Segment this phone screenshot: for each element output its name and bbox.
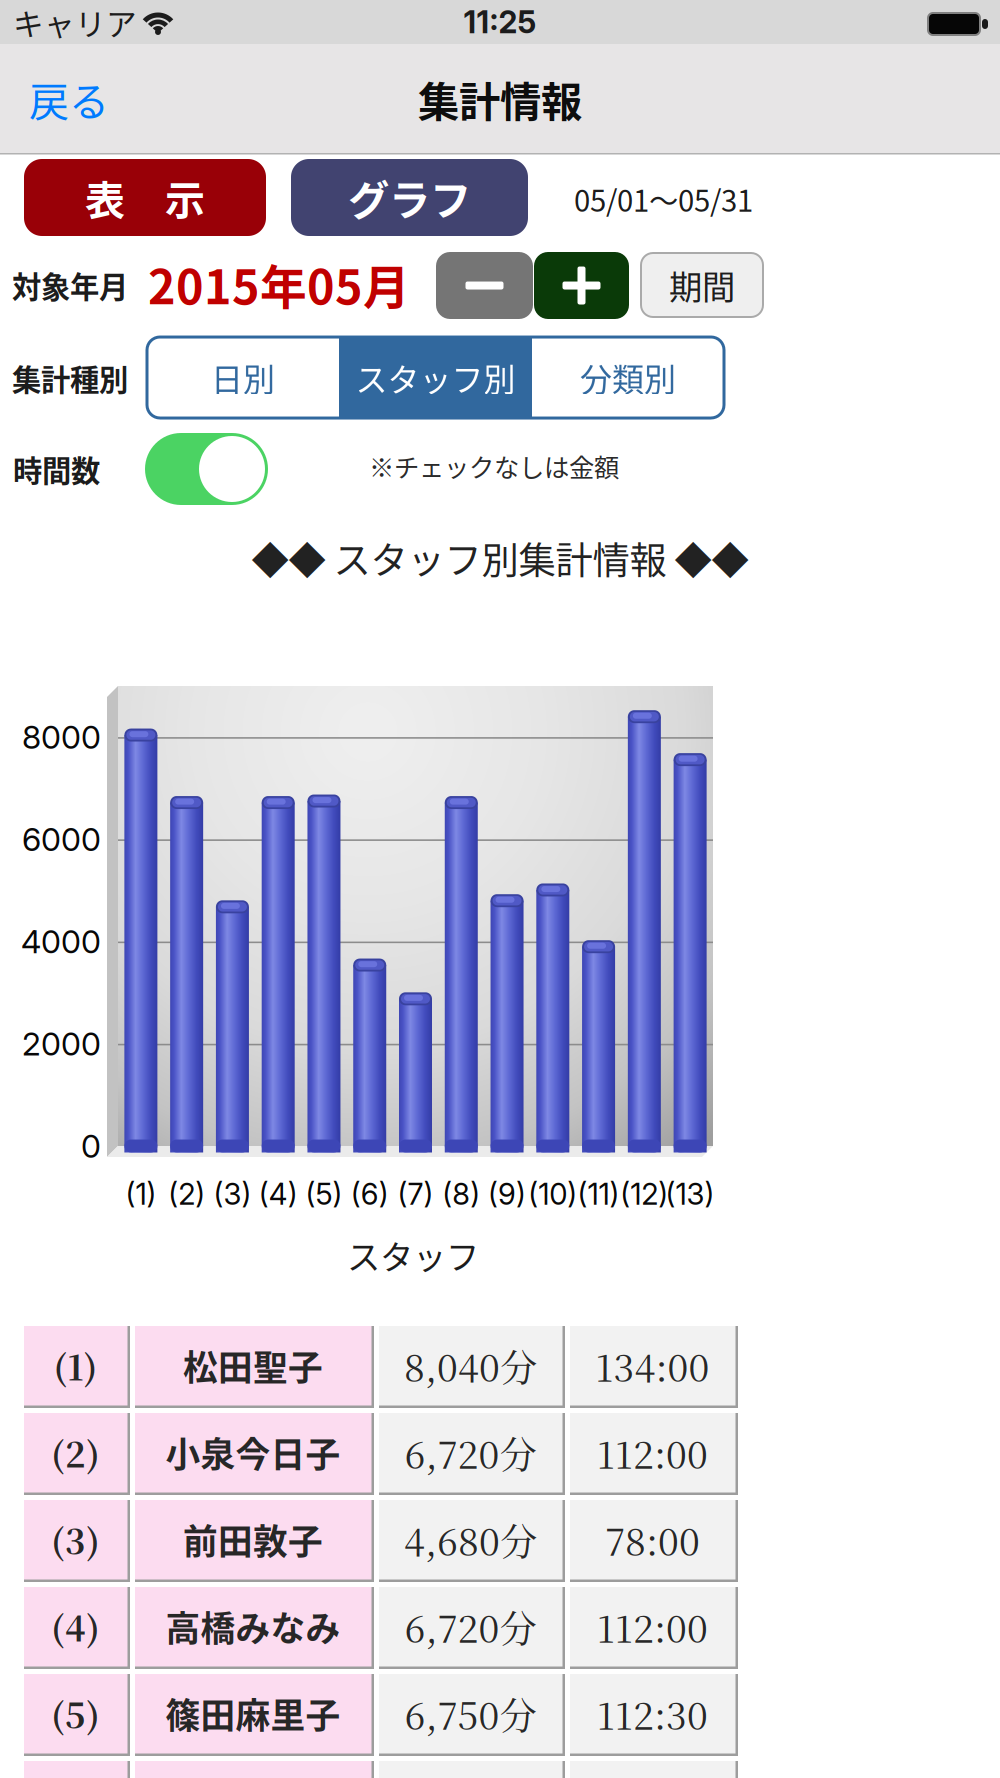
- button[interactable]: 戻る: [4, 68, 134, 130]
- button[interactable]: スタッフ別: [339, 337, 532, 418]
- button[interactable]: 表 示: [24, 159, 266, 236]
- staticText: (1): [53, 1341, 97, 1390]
- staticText: (4): [259, 1176, 298, 1212]
- staticText: (12): [620, 1176, 668, 1212]
- staticText: (1): [125, 1176, 156, 1212]
- staticText: 集計種別: [12, 357, 128, 399]
- staticText: ◆◆ スタッフ別集計情報 ◆◆: [251, 531, 748, 585]
- staticText: (3): [213, 1176, 251, 1212]
- staticText: 8,040分: [404, 1339, 537, 1392]
- staticText: 8000: [22, 718, 101, 756]
- staticText: 4000: [21, 922, 101, 961]
- staticText: (13): [666, 1176, 715, 1212]
- staticText: 対象年月: [12, 264, 128, 306]
- staticText: 松田聖子: [183, 1340, 323, 1391]
- button[interactable]: 期間: [641, 253, 763, 317]
- staticText: (10): [528, 1176, 577, 1212]
- staticText: グラフ: [348, 168, 471, 227]
- staticText: 高橋みなみ: [165, 1601, 340, 1652]
- staticText: 05/01〜05/31: [574, 178, 753, 220]
- staticText: (2): [51, 1428, 100, 1477]
- staticText: 日別: [211, 354, 275, 401]
- staticText: (9): [488, 1176, 526, 1212]
- staticText: (4): [51, 1602, 100, 1651]
- staticText: 表 示: [85, 168, 205, 226]
- staticText: ※チェックなしは金額: [369, 448, 619, 484]
- staticText: 集計情報: [418, 69, 582, 129]
- staticText: 11:25: [463, 3, 536, 40]
- staticText: 6000: [22, 820, 101, 859]
- button[interactable]: 時間数: [145, 433, 268, 505]
- staticText: 分類別: [580, 354, 676, 401]
- staticText: 78:00: [605, 1513, 700, 1566]
- staticText: スタッフ別: [355, 354, 515, 401]
- staticText: 4,680分: [404, 1513, 537, 1566]
- button[interactable]: グラフ: [291, 159, 528, 236]
- staticText: 戻る: [29, 70, 109, 128]
- button[interactable]: 分類別: [532, 337, 724, 418]
- staticText: 時間数: [13, 448, 100, 490]
- staticText: (3): [51, 1515, 100, 1564]
- staticText: 前田敦子: [183, 1514, 323, 1565]
- staticText: (5): [51, 1689, 100, 1738]
- staticText: 2000: [22, 1024, 101, 1063]
- staticText: 112:00: [597, 1600, 708, 1653]
- staticText: キャリア: [13, 0, 137, 44]
- staticText: (6): [351, 1176, 389, 1212]
- staticText: 2015年05月: [148, 250, 410, 318]
- staticText: スタッフ: [347, 1231, 479, 1279]
- staticText: 6,720分: [404, 1426, 536, 1479]
- staticText: (5): [305, 1176, 342, 1212]
- staticText: 期間: [669, 261, 735, 309]
- staticText: 112:30: [597, 1687, 708, 1740]
- staticText: 6,720分: [404, 1600, 536, 1653]
- staticText: 134:00: [595, 1339, 709, 1392]
- staticText: 小泉今日子: [165, 1427, 340, 1478]
- button[interactable]: 前の月: [436, 252, 533, 319]
- staticText: 篠田麻里子: [165, 1688, 340, 1739]
- staticText: 112:00: [597, 1426, 708, 1479]
- staticText: (8): [442, 1176, 480, 1212]
- button[interactable]: 日別: [147, 337, 339, 418]
- staticText: (2): [168, 1176, 205, 1212]
- button[interactable]: 次の月: [534, 252, 629, 319]
- staticText: (11): [578, 1176, 620, 1212]
- staticText: 0: [81, 1127, 101, 1165]
- staticText: (7): [397, 1176, 433, 1212]
- staticText: 6,750分: [404, 1687, 536, 1740]
